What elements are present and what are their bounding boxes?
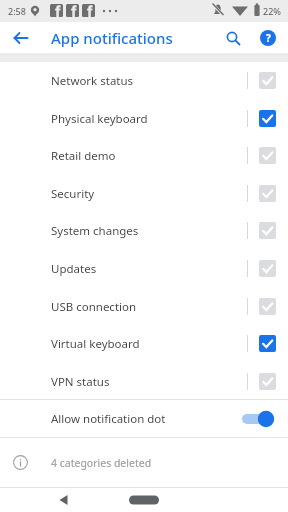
button[interactable]: Back <box>8 25 34 51</box>
staticText: USB connection <box>51 299 247 315</box>
button[interactable]: System changes <box>0 212 288 249</box>
button[interactable]: Home <box>127 491 161 509</box>
staticText: Updates <box>51 261 247 277</box>
staticText: Security <box>51 186 247 202</box>
button[interactable]: Security <box>0 175 288 212</box>
button[interactable]: Physical keyboard <box>0 100 288 137</box>
button[interactable]: 4 categories deleted <box>0 438 288 487</box>
button[interactable]: Back <box>52 488 76 512</box>
button[interactable]: Network status <box>0 62 288 99</box>
staticText: Network status <box>51 73 247 89</box>
button[interactable]: Allow notification dot <box>0 400 288 437</box>
staticText: 4 categories deleted <box>51 456 152 470</box>
button[interactable]: Search <box>220 25 246 51</box>
button[interactable]: Updates <box>0 250 288 287</box>
staticText: Allow notification dot <box>51 411 242 427</box>
staticText: 22% <box>263 5 281 17</box>
button[interactable]: Retail demo <box>0 137 288 174</box>
button[interactable]: USB connection <box>0 288 288 325</box>
button[interactable]: VPN status <box>0 363 288 400</box>
staticText: Retail demo <box>51 148 247 164</box>
staticText: System changes <box>51 223 247 239</box>
staticText: VPN status <box>51 374 247 390</box>
staticText: Virtual keyboard <box>51 336 247 352</box>
staticText: ? <box>266 31 271 45</box>
staticText: 2:58 <box>8 5 26 17</box>
button[interactable]: Virtual keyboard <box>0 325 288 362</box>
staticText: Physical keyboard <box>51 111 247 127</box>
button[interactable]: Help <box>255 25 281 51</box>
staticText: App notifications <box>51 28 173 48</box>
